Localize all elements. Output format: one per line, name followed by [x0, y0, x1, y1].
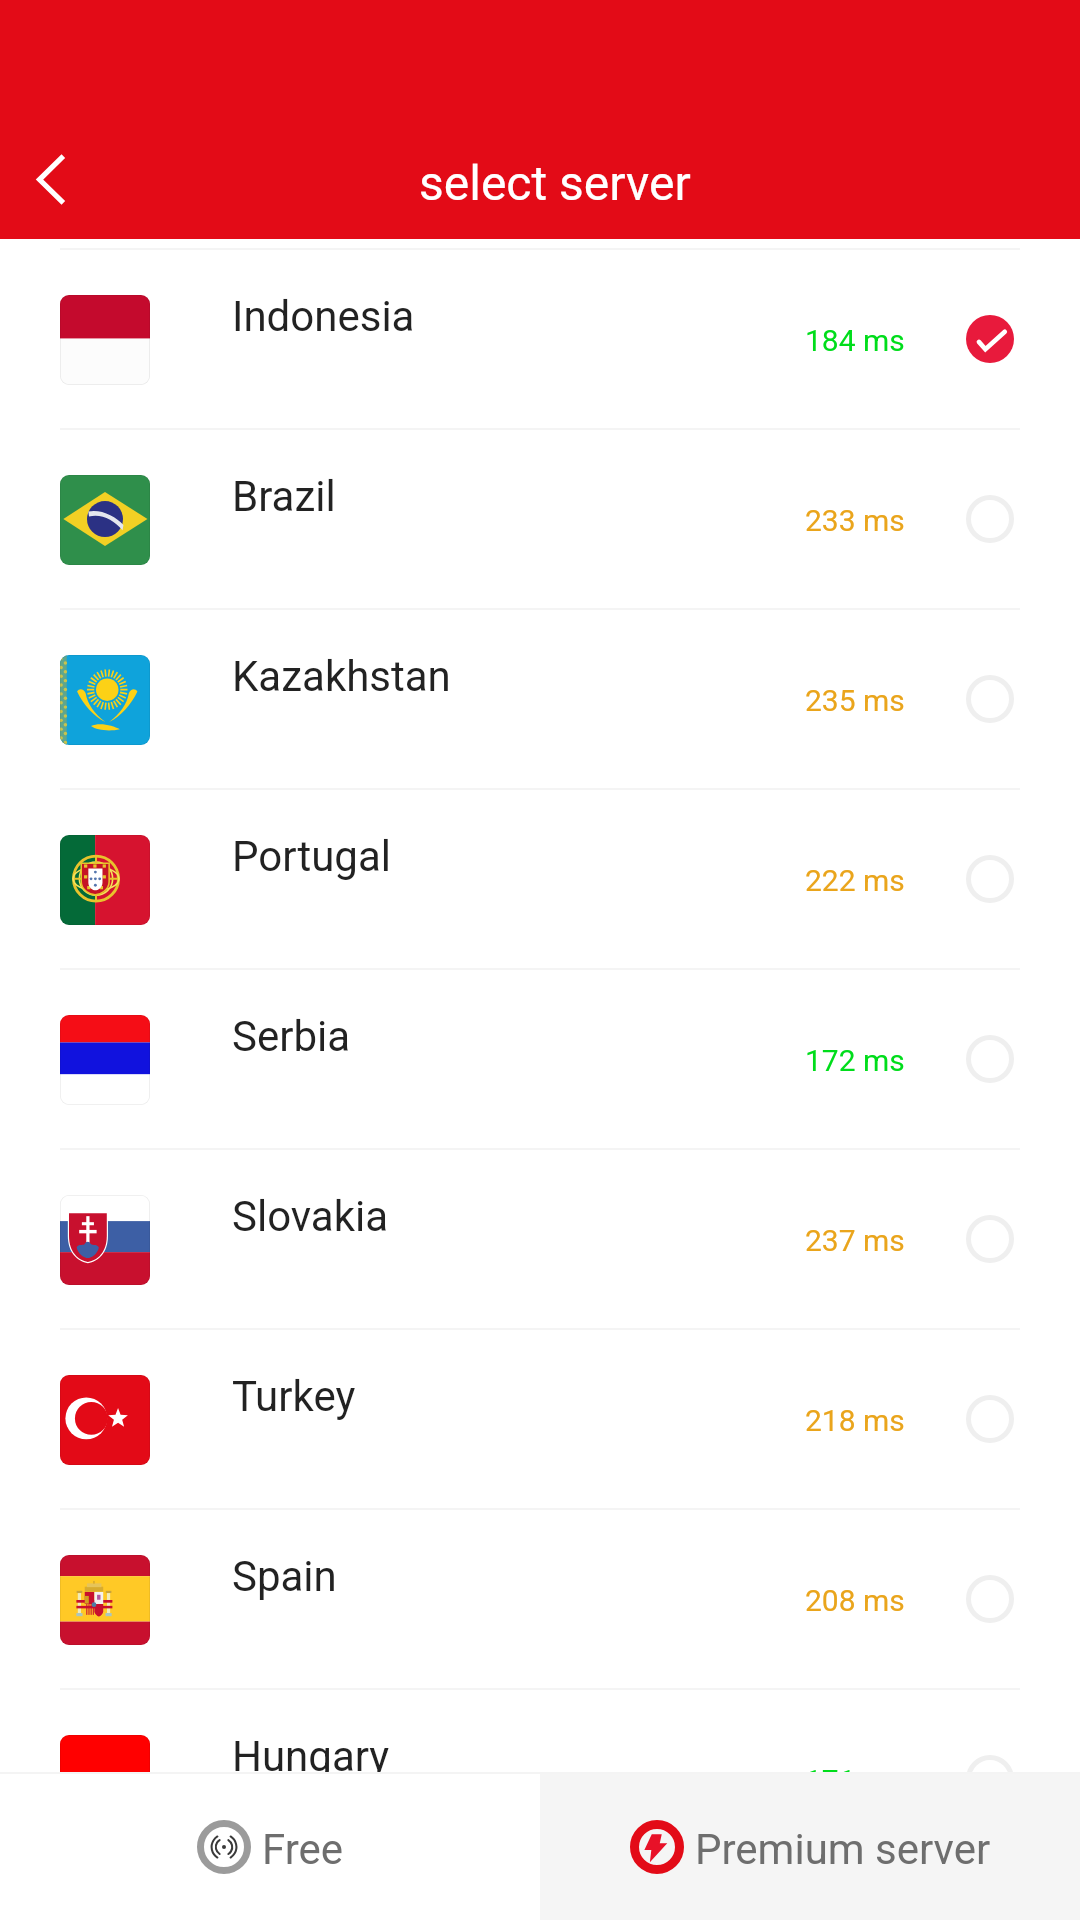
staticText: Serbia: [232, 1012, 351, 1061]
staticText: 222 ms: [805, 863, 905, 898]
staticText: 237 ms: [805, 1223, 905, 1258]
staticText: Spain: [232, 1552, 337, 1601]
staticText: Kazakhstan: [232, 652, 451, 701]
staticText: 208 ms: [805, 1583, 905, 1618]
button[interactable]: Spain: [0, 1508, 1080, 1688]
staticText: select server: [419, 155, 691, 211]
button[interactable]: Brazil: [0, 428, 1080, 608]
staticText: Brazil: [232, 472, 336, 521]
staticText: Slovakia: [232, 1192, 389, 1241]
staticText: 171 ms: [805, 1763, 905, 1798]
staticText: 172 ms: [805, 1043, 905, 1078]
button[interactable]: Slovakia: [0, 1148, 1080, 1328]
button[interactable]: Back: [0, 125, 110, 235]
button[interactable]: Kazakhstan: [0, 608, 1080, 788]
staticText: Turkey: [232, 1372, 356, 1421]
staticText: Hungary: [232, 1732, 390, 1781]
staticText: Indonesia: [232, 292, 415, 341]
button[interactable]: Turkey: [0, 1328, 1080, 1508]
button[interactable]: Serbia: [0, 968, 1080, 1148]
staticText: Premium server: [695, 1825, 991, 1874]
button[interactable]: Hungary: [0, 1688, 1080, 1868]
staticText: Free: [262, 1825, 344, 1874]
button[interactable]: Premium server: [540, 1774, 1080, 1920]
button[interactable]: Indonesia: [0, 248, 1080, 428]
button[interactable]: Portugal: [0, 788, 1080, 968]
staticText: 218 ms: [805, 1403, 905, 1438]
staticText: 184 ms: [805, 323, 905, 358]
staticText: 235 ms: [805, 683, 905, 718]
staticText: 233 ms: [805, 503, 905, 538]
button[interactable]: Free: [0, 1774, 540, 1920]
staticText: Portugal: [232, 832, 391, 881]
